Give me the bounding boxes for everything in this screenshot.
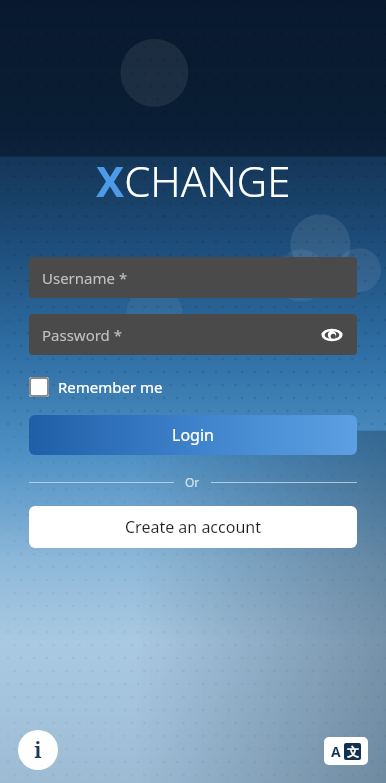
button[interactable]: Information xyxy=(18,730,58,770)
button[interactable]: Create an account xyxy=(29,506,357,548)
staticText: Username * xyxy=(42,268,128,288)
button[interactable]: Show password xyxy=(317,320,347,350)
staticText: Create an account xyxy=(125,516,261,538)
staticText: Remember me xyxy=(58,377,163,397)
staticText: XCHANGE xyxy=(96,152,291,209)
button[interactable]: Login xyxy=(29,415,357,455)
button[interactable]: Translate xyxy=(324,737,368,765)
staticText: i xyxy=(34,736,42,765)
staticText: Or xyxy=(185,474,200,490)
staticText: A xyxy=(331,742,341,761)
staticText: 文 xyxy=(347,744,359,759)
button[interactable]: Password * xyxy=(29,314,357,355)
staticText: Password * xyxy=(42,325,123,345)
button[interactable]: Remember me xyxy=(29,371,163,403)
button[interactable]: Username * xyxy=(29,257,357,298)
staticText: Login xyxy=(172,424,214,446)
